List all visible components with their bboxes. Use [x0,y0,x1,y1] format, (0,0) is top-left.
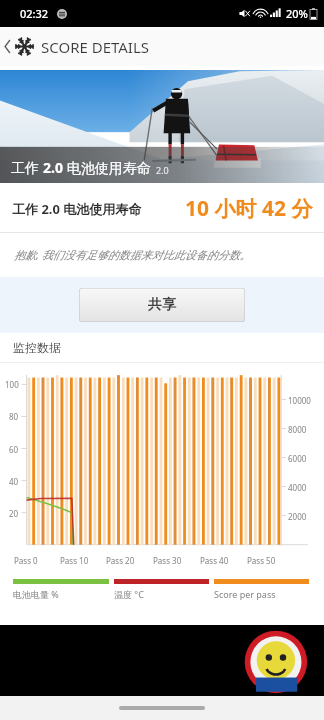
staticText: Score per pass [214,588,309,600]
staticText: 抱歉, 我们没有足够的数据来对比此设备的分数。 [14,247,251,262]
staticText: 电池使用寿命 [63,158,151,177]
staticText: 6000 [288,453,307,464]
staticText: 共享 [148,296,176,314]
staticText: 10000 [288,395,311,406]
staticText: 80 [9,411,19,422]
staticText: 8000 [288,424,307,435]
staticText: 02:32 [20,6,49,21]
staticText: 10 小时 42 分 [185,194,313,223]
staticText: 20% [286,6,308,21]
staticText: Pass 40 [200,555,247,566]
staticText: 2.0 [156,164,169,176]
staticText: 40 [9,476,19,487]
staticText: 工作 [11,158,43,177]
staticText: Pass 30 [153,555,200,566]
staticText: Pass 20 [106,555,153,566]
staticText: 温度 °C [114,588,209,600]
staticText: Pass 10 [60,555,106,566]
staticText: 60 [9,444,19,455]
staticText: 4000 [288,482,307,493]
button[interactable]: Back [0,27,15,66]
staticText: 2.0 [43,158,63,177]
staticText: 20 [9,508,19,519]
button[interactable]: 共享 [79,288,245,322]
staticText: 工作 2.0 电池使用寿命 [12,200,142,218]
staticText: 电池电量 % [13,588,109,600]
staticText: 2000 [288,511,307,522]
staticText: 100 [5,379,19,390]
staticText: SCORE DETAILS [41,37,150,57]
staticText: Pass 50 [247,555,294,566]
staticText: Pass 0 [14,555,60,566]
staticText: 监控数据 [13,340,61,355]
